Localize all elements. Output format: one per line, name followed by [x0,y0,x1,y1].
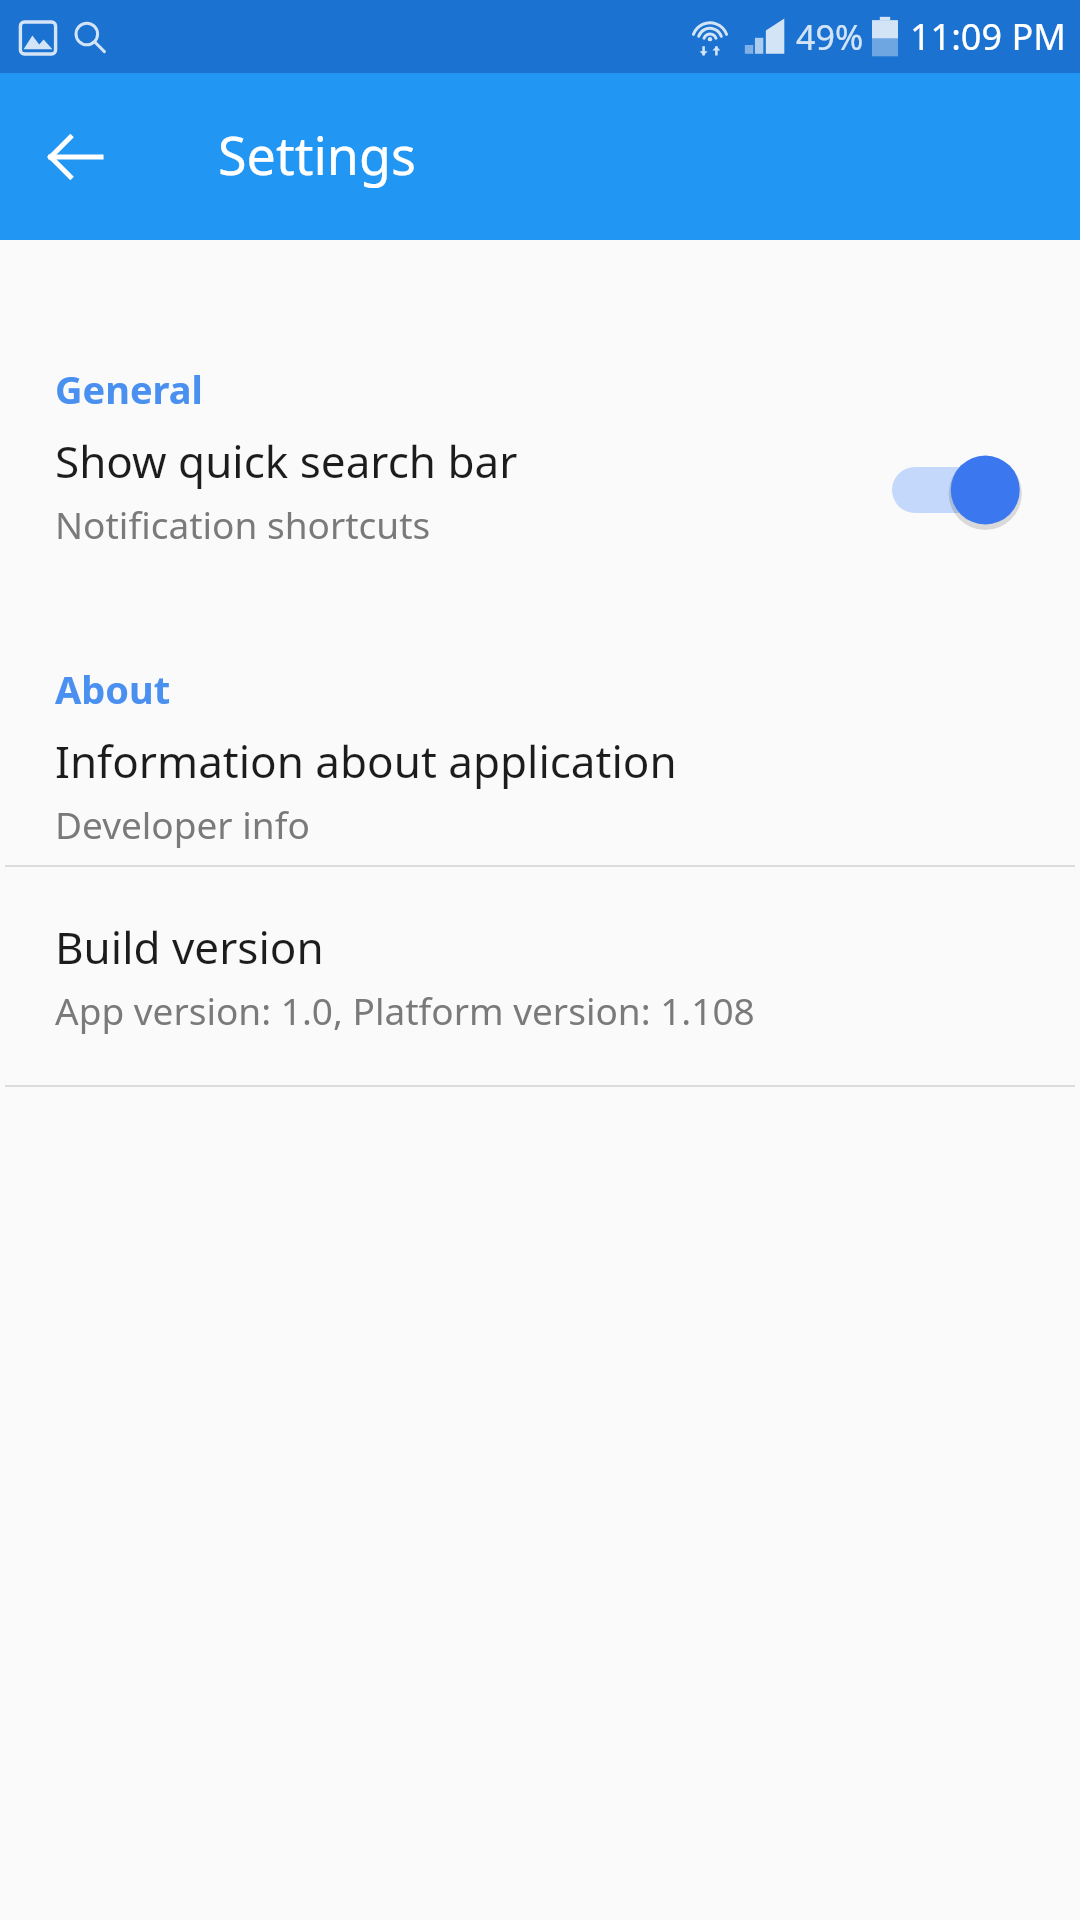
button[interactable]: Information about application [0,715,1080,865]
button[interactable]: Show quick search bar [0,415,1080,565]
button[interactable]: Show quick search bar toggle [892,440,1032,540]
staticText: App version: 1.0, Platform version: 1.10… [55,985,755,1035]
staticText: About [55,663,171,715]
staticText: 11:09 PM [910,12,1066,61]
staticText: Settings [218,119,416,190]
staticText: Show quick search bar [55,431,518,491]
staticText: 49% [796,14,864,60]
staticText: Information about application [55,731,677,791]
staticText: Notification shortcuts [55,499,431,549]
staticText: General [55,363,203,415]
button[interactable]: Back [20,102,130,212]
button[interactable]: Build version [0,867,1080,1085]
staticText: Developer info [55,799,310,849]
staticText: Build version [55,917,324,977]
